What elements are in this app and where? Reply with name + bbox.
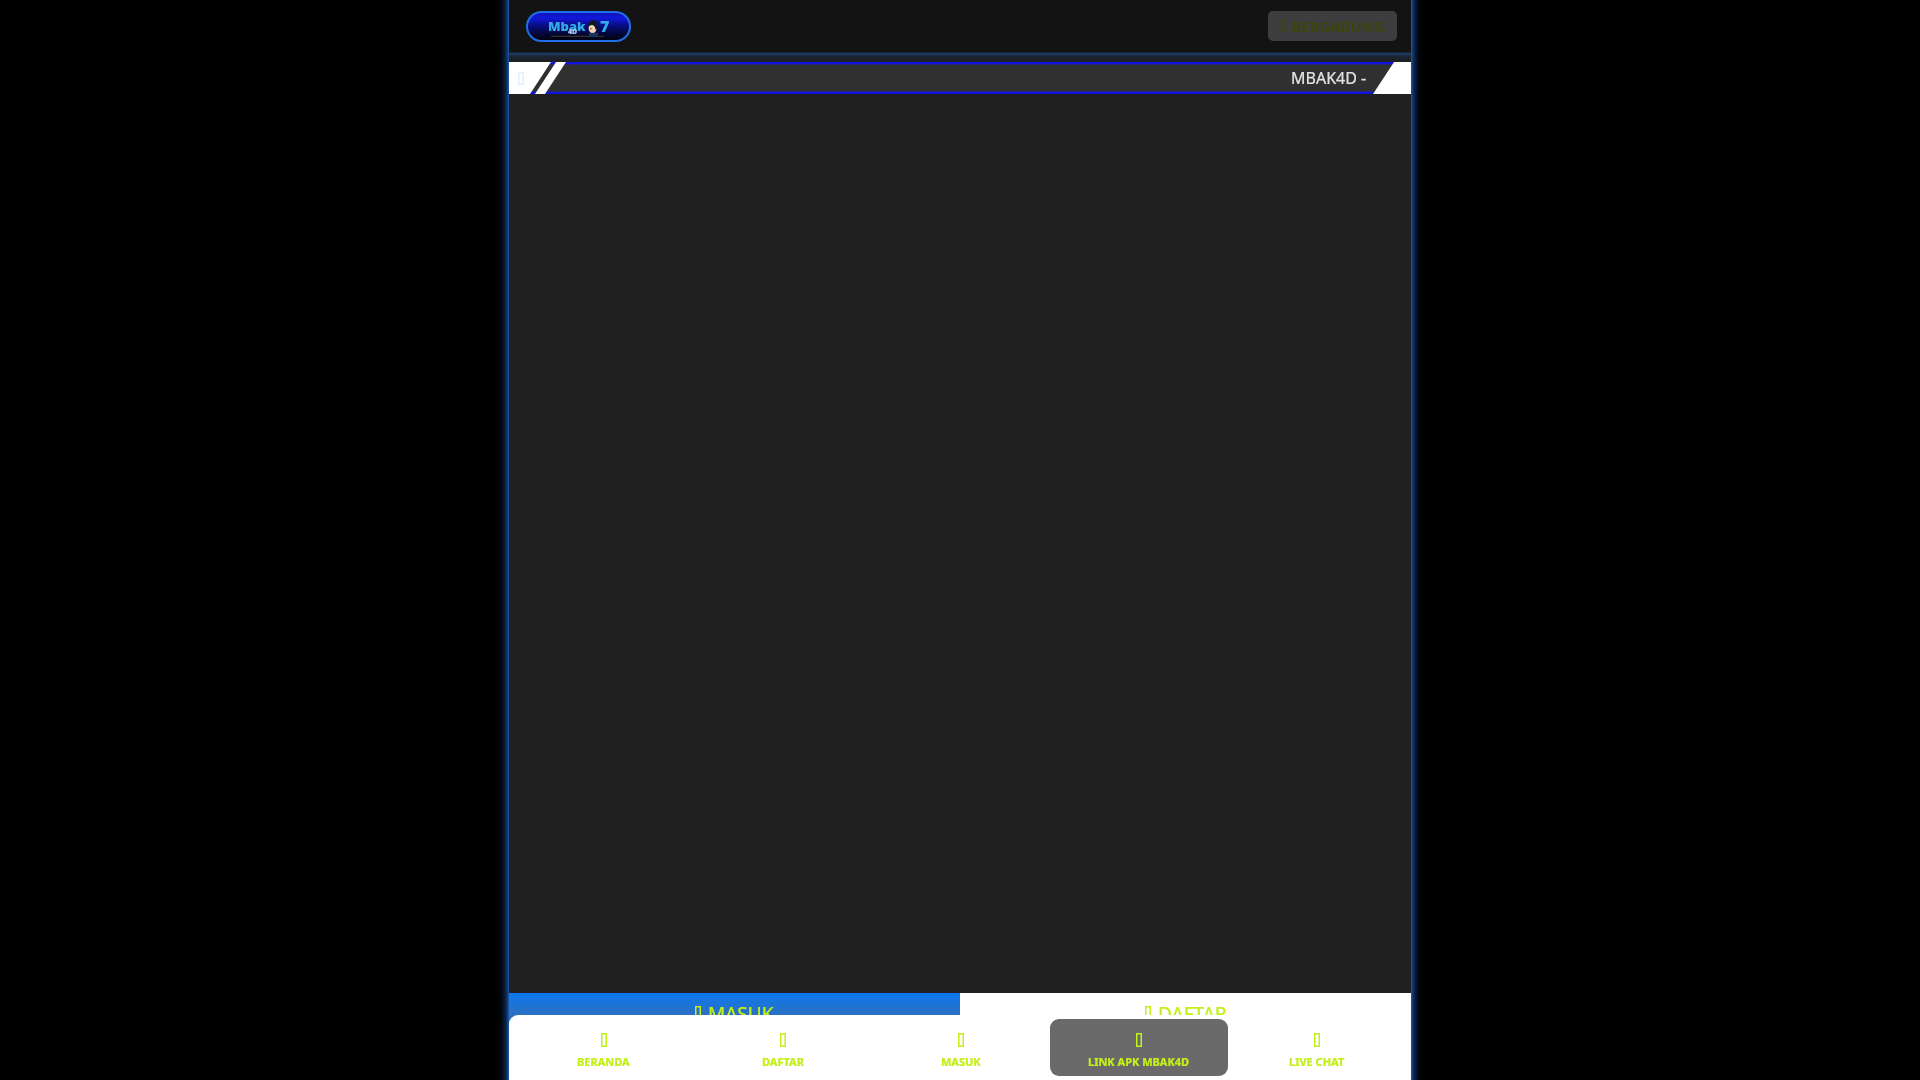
button[interactable]: MASUK (509, 993, 960, 1080)
button[interactable]: DAFTAR (693, 1015, 872, 1080)
staticText: BERGABUNG (1291, 16, 1385, 36)
staticText: MASUK (708, 1001, 774, 1027)
staticText: MASUK (941, 1054, 981, 1069)
button[interactable]: MBAK4D news ticker (509, 62, 1411, 94)
staticText: Mbak (548, 17, 586, 35)
staticText: DAFTAR (762, 1054, 804, 1069)
staticText: 4D (568, 27, 578, 37)
button[interactable]: Mbak4D home logo (526, 11, 631, 42)
button[interactable]: MASUK (872, 1015, 1050, 1080)
button[interactable]: BERGABUNG (1268, 11, 1397, 41)
staticText: LINK APK MBAK4D (1088, 1054, 1190, 1069)
staticText: BERANDA (577, 1054, 630, 1069)
staticText: LIVE CHAT (1289, 1054, 1345, 1069)
button[interactable]: LINK APK MBAK4D (1050, 1019, 1228, 1076)
staticText: 7 (600, 15, 610, 37)
button[interactable]: DAFTAR (960, 993, 1411, 1080)
staticText: MBAK4D - (1291, 67, 1367, 89)
button[interactable]: BERANDA (514, 1015, 693, 1080)
staticText: DAFTAR (1158, 1001, 1227, 1027)
button[interactable]: LIVE CHAT (1228, 1015, 1406, 1080)
